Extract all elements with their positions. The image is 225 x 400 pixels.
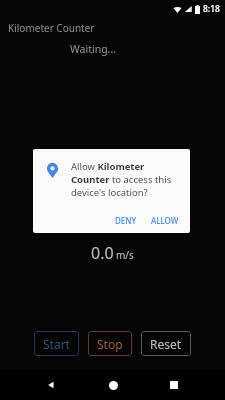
staticText: ALLOW bbox=[151, 215, 179, 226]
button[interactable]: ALLOW bbox=[146, 212, 184, 229]
staticText: Kilometer Counter bbox=[8, 21, 95, 35]
staticText: 0.0 bbox=[93, 207, 116, 229]
button[interactable]: Stop bbox=[88, 331, 132, 356]
button[interactable]: Start bbox=[34, 331, 79, 356]
button[interactable]: Back bbox=[38, 372, 64, 398]
button[interactable]: Recent apps bbox=[161, 372, 187, 398]
staticText: Waiting... bbox=[70, 42, 117, 56]
staticText: 8:18 bbox=[203, 3, 220, 15]
staticText: m/s bbox=[116, 248, 134, 262]
button[interactable]: DENY bbox=[110, 212, 142, 229]
staticText: Allow Kilometer Counter to access this d… bbox=[71, 160, 181, 199]
button[interactable]: Home bbox=[100, 372, 126, 398]
staticText: DENY bbox=[115, 215, 137, 226]
staticText: Stop bbox=[97, 336, 123, 352]
staticText: Start bbox=[43, 336, 70, 352]
staticText: Reset bbox=[150, 336, 182, 352]
button[interactable]: Reset bbox=[141, 331, 191, 356]
staticText: 0.0 bbox=[91, 242, 114, 264]
staticText: km bbox=[118, 213, 133, 227]
